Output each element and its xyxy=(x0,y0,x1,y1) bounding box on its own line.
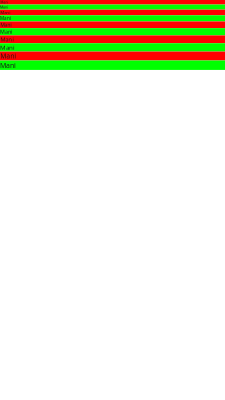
staticText: Mani xyxy=(0,35,13,43)
staticText: Mani xyxy=(0,43,15,52)
staticText: Mani xyxy=(0,10,10,15)
staticText: Mani xyxy=(0,21,11,28)
staticText: Mani xyxy=(0,52,16,60)
staticText: Mani xyxy=(0,60,16,70)
staticText: Mani xyxy=(0,28,12,35)
staticText: Mani xyxy=(0,4,8,10)
staticText: Mani xyxy=(0,15,11,21)
staticText: Mani xyxy=(0,0,8,4)
